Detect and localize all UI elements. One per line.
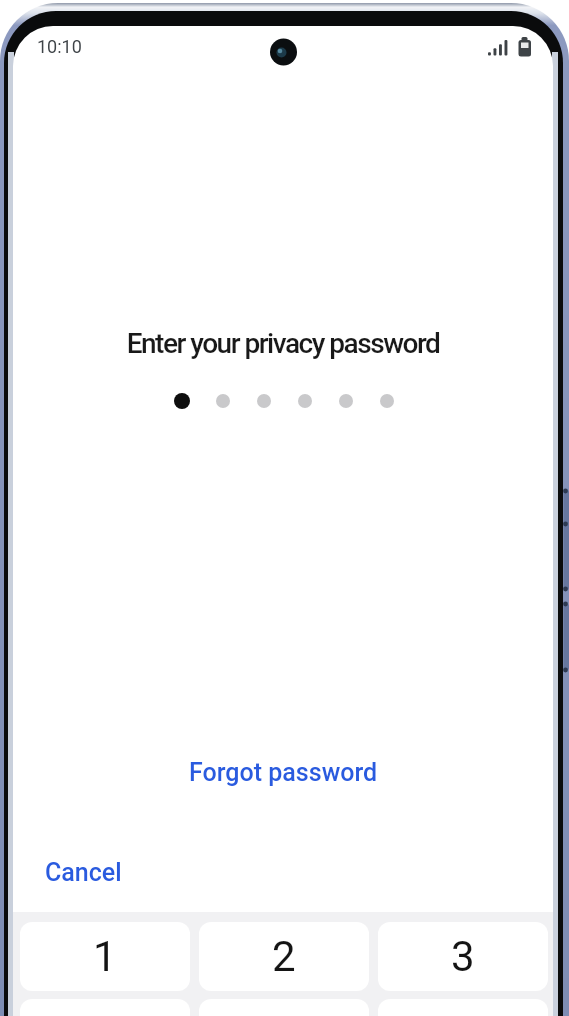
staticText: 3	[451, 932, 475, 981]
button[interactable]: Forgot password	[189, 758, 378, 787]
staticText: Enter your privacy password	[13, 327, 553, 360]
button[interactable]: 1	[20, 922, 190, 991]
staticText: 1	[93, 932, 117, 981]
staticText: 2	[272, 932, 296, 981]
button[interactable]: 3	[378, 922, 548, 991]
button[interactable]: 2	[199, 922, 369, 991]
button[interactable]: Cancel	[45, 858, 122, 887]
staticText: 10:10	[37, 36, 82, 57]
